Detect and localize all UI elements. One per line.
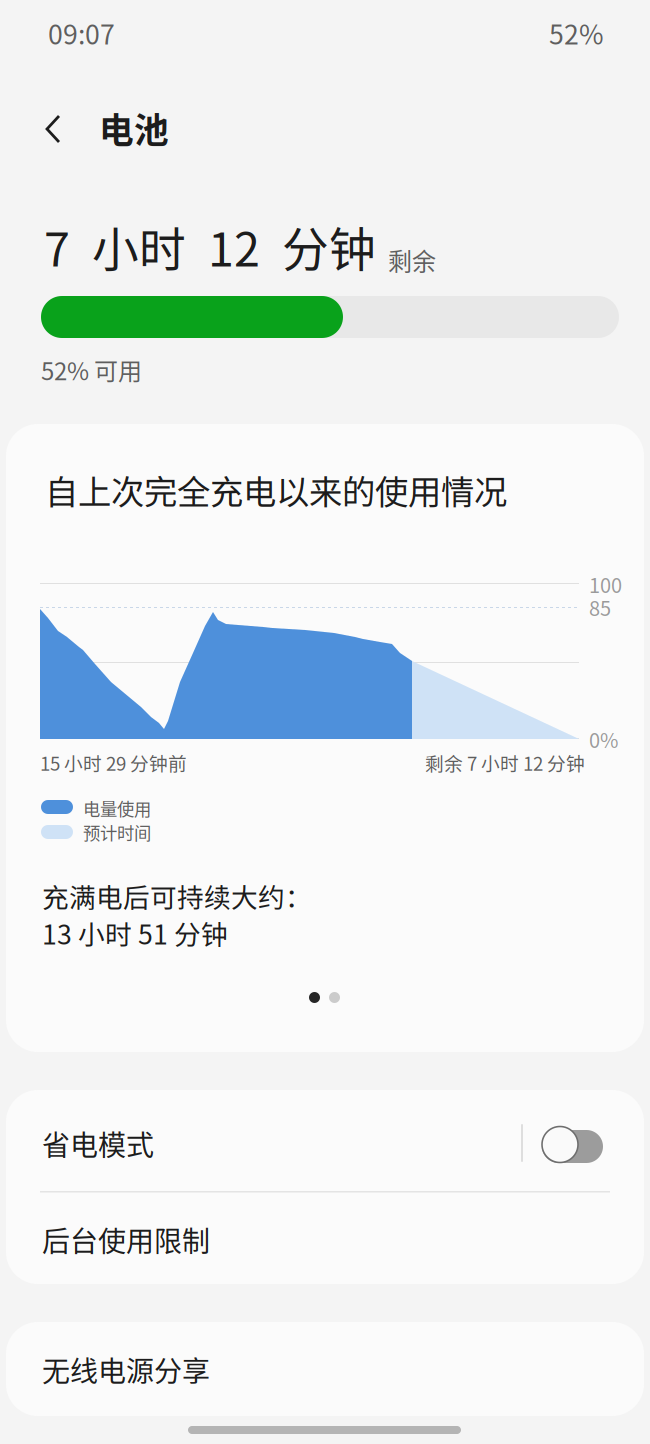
button[interactable]: 后台使用限制 bbox=[0, 0, 638, 93]
button[interactable]: Back bbox=[0, 0, 56, 56]
staticText: 分钟 bbox=[282, 212, 376, 280]
staticText: 12 bbox=[208, 212, 260, 280]
staticText: 0% bbox=[589, 725, 618, 754]
staticText: 52% 可用 bbox=[41, 352, 142, 387]
staticText: 15 小时 29 分钟前 bbox=[40, 749, 187, 776]
staticText: 后台使用限制 bbox=[42, 1219, 210, 1260]
staticText: 预计时间 bbox=[83, 819, 151, 845]
staticText: 剩余 7 小时 12 分钟 bbox=[425, 749, 585, 776]
staticText: 剩余 bbox=[388, 242, 436, 277]
button[interactable]: 省电模式 bbox=[0, 0, 638, 101]
staticText: 13 小时 51 分钟 bbox=[42, 914, 228, 952]
staticText: 省电模式 bbox=[42, 1123, 154, 1164]
staticText: 100 bbox=[589, 570, 622, 599]
staticText: 无线电源分享 bbox=[42, 1349, 210, 1390]
staticText: 电量使用 bbox=[83, 795, 151, 821]
staticText: 09:07 bbox=[48, 14, 115, 52]
staticText: 自上次完全充电以来的使用情况 bbox=[45, 465, 507, 514]
staticText: 电池 bbox=[99, 103, 169, 153]
staticText: 充满电后可持续大约： bbox=[42, 877, 312, 915]
button[interactable]: 无线电源分享 bbox=[0, 0, 638, 94]
staticText: 小时 bbox=[92, 212, 186, 280]
staticText: 52% bbox=[549, 14, 604, 52]
staticText: 85 bbox=[589, 593, 611, 622]
staticText: 7 bbox=[44, 212, 70, 280]
